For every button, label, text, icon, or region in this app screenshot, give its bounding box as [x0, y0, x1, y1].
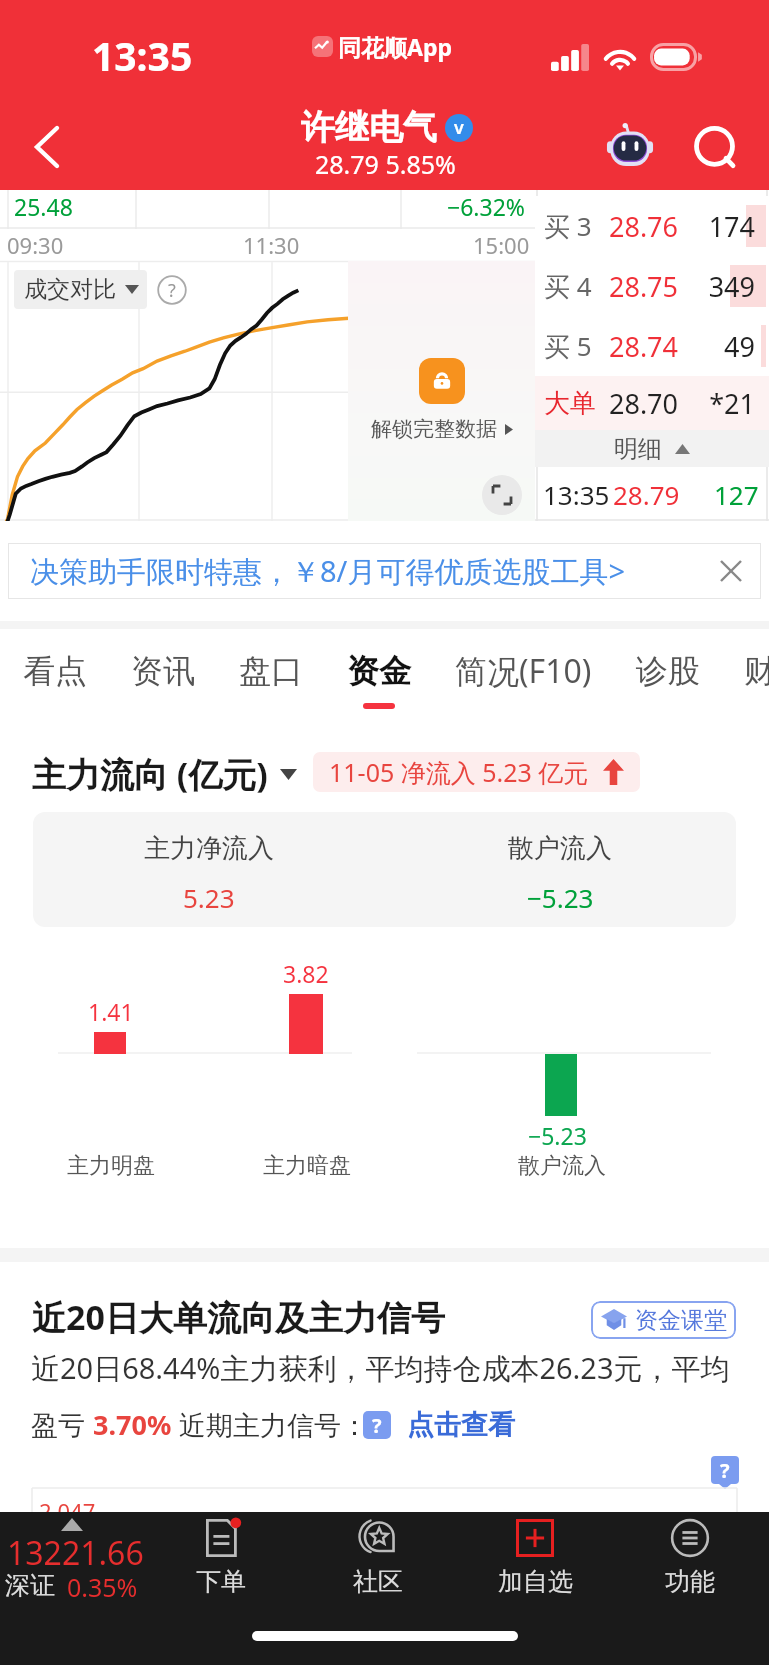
staticText: 散户流入	[508, 832, 612, 865]
staticText: 盈亏	[31, 1406, 93, 1443]
staticText: 主力暗盘	[263, 1152, 351, 1180]
staticText: 加自选	[498, 1566, 573, 1597]
staticText: 财	[744, 651, 748, 691]
staticText: 许继电气	[301, 106, 437, 149]
staticText: 近20日68.44%主力获利，平均持仓成本26.23元，平均	[31, 1348, 730, 1388]
staticText: 28.79 5.85%	[315, 147, 456, 181]
staticText: 28.76	[609, 208, 679, 245]
button[interactable]: 财	[722, 629, 769, 729]
staticText: 09:30	[7, 230, 64, 260]
staticText: 同花顺App	[338, 31, 452, 62]
staticText: 28.79	[613, 477, 680, 512]
staticText: 1.41	[88, 996, 134, 1027]
staticText: 决策助手限时特惠，￥8/月可得优质选股工具>	[30, 551, 625, 591]
button[interactable]: 主力流向 (亿元)	[32, 751, 297, 797]
staticText: 11-05 净流入 5.23 亿元	[329, 755, 589, 789]
staticText: 3.82	[283, 958, 329, 989]
staticText: 明细	[614, 434, 662, 464]
button[interactable]: Search	[690, 120, 752, 180]
button[interactable]: 买 3	[535, 196, 769, 256]
staticText: 下单	[196, 1566, 246, 1597]
staticText: 盘口	[239, 651, 303, 691]
staticText: 349	[708, 268, 755, 305]
button[interactable]: 加自选	[480, 1516, 590, 1597]
button[interactable]: 看点	[1, 629, 109, 729]
button[interactable]: 解锁完整数据	[348, 261, 535, 521]
staticText: 25.48	[14, 191, 73, 222]
staticText: ?	[372, 1412, 382, 1439]
staticText: 资金	[347, 651, 411, 691]
staticText: V	[454, 118, 464, 138]
button[interactable]: 诊股	[614, 629, 722, 729]
staticText: 资金课堂	[635, 1306, 727, 1335]
staticText: 13:35	[92, 29, 193, 82]
button[interactable]: 买 4	[535, 256, 769, 316]
staticText: ?	[168, 278, 176, 303]
staticText: 3.70%	[93, 1406, 172, 1443]
button[interactable]: 简况(F10)	[433, 629, 614, 729]
staticText: 买 4	[544, 268, 592, 304]
staticText: −6.32%	[447, 191, 525, 222]
staticText: 诊股	[636, 651, 700, 691]
staticText: ?	[720, 1457, 730, 1484]
staticText: 主力明盘	[67, 1152, 155, 1180]
staticText: 主力净流入	[144, 832, 274, 865]
staticText: 功能	[665, 1566, 715, 1597]
button[interactable]: AI assistant	[596, 114, 664, 174]
staticText: 大单	[544, 387, 596, 420]
button[interactable]: Fullscreen	[482, 475, 522, 515]
button[interactable]: 社区	[323, 1516, 433, 1597]
staticText: 看点	[23, 651, 87, 691]
button[interactable]: Help	[711, 1456, 739, 1484]
button[interactable]: 盘口	[217, 629, 325, 729]
button[interactable]: 资金	[325, 629, 433, 729]
staticText: 买 5	[544, 328, 592, 364]
staticText: 近期主力信号：	[172, 1406, 369, 1443]
button[interactable]: 成交对比	[14, 270, 147, 309]
staticText: 近20日大单流向及主力信号	[32, 1294, 445, 1340]
staticText: 解锁完整数据	[371, 416, 497, 442]
button[interactable]: 资讯	[109, 629, 217, 729]
staticText: 13221.66	[7, 1531, 144, 1575]
button[interactable]: 资金课堂	[591, 1301, 736, 1339]
staticText: 成交对比	[24, 275, 116, 304]
staticText: 11:30	[243, 230, 300, 260]
button[interactable]: 明细	[535, 430, 769, 467]
staticText: 127	[714, 477, 759, 512]
button[interactable]: 决策助手限时特惠，￥8/月可得优质选股工具>	[8, 543, 761, 599]
staticText: 13:35	[543, 477, 610, 512]
staticText: 点击查看	[407, 1408, 515, 1442]
button[interactable]: Back	[18, 118, 76, 176]
staticText: −5.23	[527, 880, 594, 915]
staticText: −5.23	[528, 1120, 587, 1151]
staticText: 49	[724, 328, 755, 365]
staticText: 散户流入	[518, 1152, 606, 1180]
staticText: 28.74	[609, 328, 679, 365]
staticText: 买 3	[544, 208, 592, 244]
button[interactable]: 11-05 净流入 5.23 亿元	[313, 752, 640, 792]
button[interactable]: 13221.66	[0, 1512, 143, 1612]
button[interactable]: 大单	[535, 376, 769, 430]
staticText: 主力流向 (亿元)	[32, 751, 268, 797]
staticText: 深证	[5, 1570, 55, 1601]
button[interactable]: 买 5	[535, 316, 769, 376]
staticText: 174	[708, 208, 755, 245]
button[interactable]: Close	[711, 551, 751, 591]
button[interactable]: 下单	[166, 1516, 276, 1597]
staticText: 0.35%	[67, 1570, 138, 1604]
staticText: 28.75	[609, 268, 679, 305]
staticText: *21	[709, 385, 755, 422]
staticText: 5.23	[183, 880, 235, 915]
staticText: 15:00	[473, 230, 530, 260]
staticText: 28.70	[609, 385, 679, 422]
staticText: 社区	[353, 1566, 403, 1597]
staticText: 资讯	[131, 651, 195, 691]
staticText: 2.047	[39, 1496, 96, 1526]
staticText: 简况(F10)	[455, 649, 592, 693]
button[interactable]: 功能	[635, 1516, 745, 1597]
